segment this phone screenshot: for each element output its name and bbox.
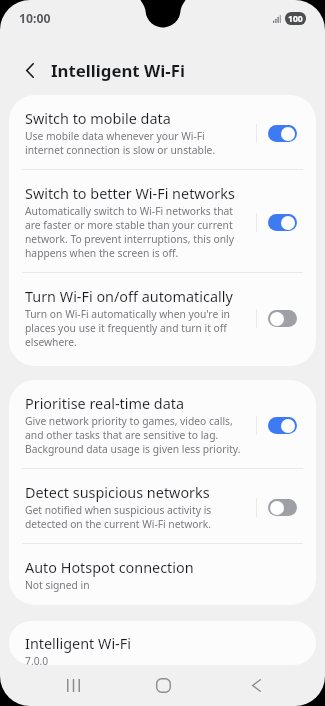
staticText: Not signed in [25, 578, 90, 592]
button[interactable] [268, 499, 297, 516]
button[interactable] [268, 417, 297, 434]
staticText: Automatically switch to Wi-Fi networks t… [25, 204, 235, 260]
staticText: Use mobile data whenever your Wi-Fi inte… [25, 129, 216, 157]
staticText: Prioritise real-time data [25, 394, 184, 414]
button[interactable]: Intelligent Wi-Fi [9, 621, 316, 665]
button[interactable]: Navigate up [13, 53, 47, 87]
staticText: 10:00 [19, 10, 51, 27]
staticText: Intelligent Wi-Fi [25, 634, 131, 654]
staticText: Turn Wi-Fi on/off automatically [25, 287, 233, 307]
button[interactable]: Prioritise real-time data [9, 380, 316, 468]
staticText: Switch to better Wi-Fi networks [25, 184, 235, 204]
staticText: Auto Hotspot connection [25, 558, 194, 578]
button[interactable]: Turn Wi-Fi on/off automatically [9, 273, 316, 366]
staticText: Turn on Wi-Fi automatically when you're … [25, 307, 230, 349]
button[interactable]: Home [133, 665, 193, 706]
button[interactable] [268, 125, 297, 142]
button[interactable] [268, 310, 297, 327]
button[interactable]: Switch to better Wi-Fi networks [9, 170, 316, 272]
staticText: Intelligent Wi-Fi [51, 59, 185, 82]
button[interactable]: Switch to mobile data [9, 95, 316, 169]
button[interactable]: Back [226, 665, 286, 706]
staticText: 7.0.0 [25, 654, 49, 665]
button[interactable] [268, 214, 297, 231]
button[interactable]: Auto Hotspot connection [9, 544, 316, 605]
button[interactable]: Detect suspicious networks [9, 469, 316, 543]
button[interactable]: Recents [43, 665, 103, 706]
staticText: Give network priority to games, video ca… [25, 414, 241, 456]
staticText: 100 [288, 13, 303, 25]
staticText: Detect suspicious networks [25, 483, 210, 503]
staticText: Switch to mobile data [25, 109, 171, 129]
staticText: Get notified when suspicious activity is… [25, 503, 212, 531]
